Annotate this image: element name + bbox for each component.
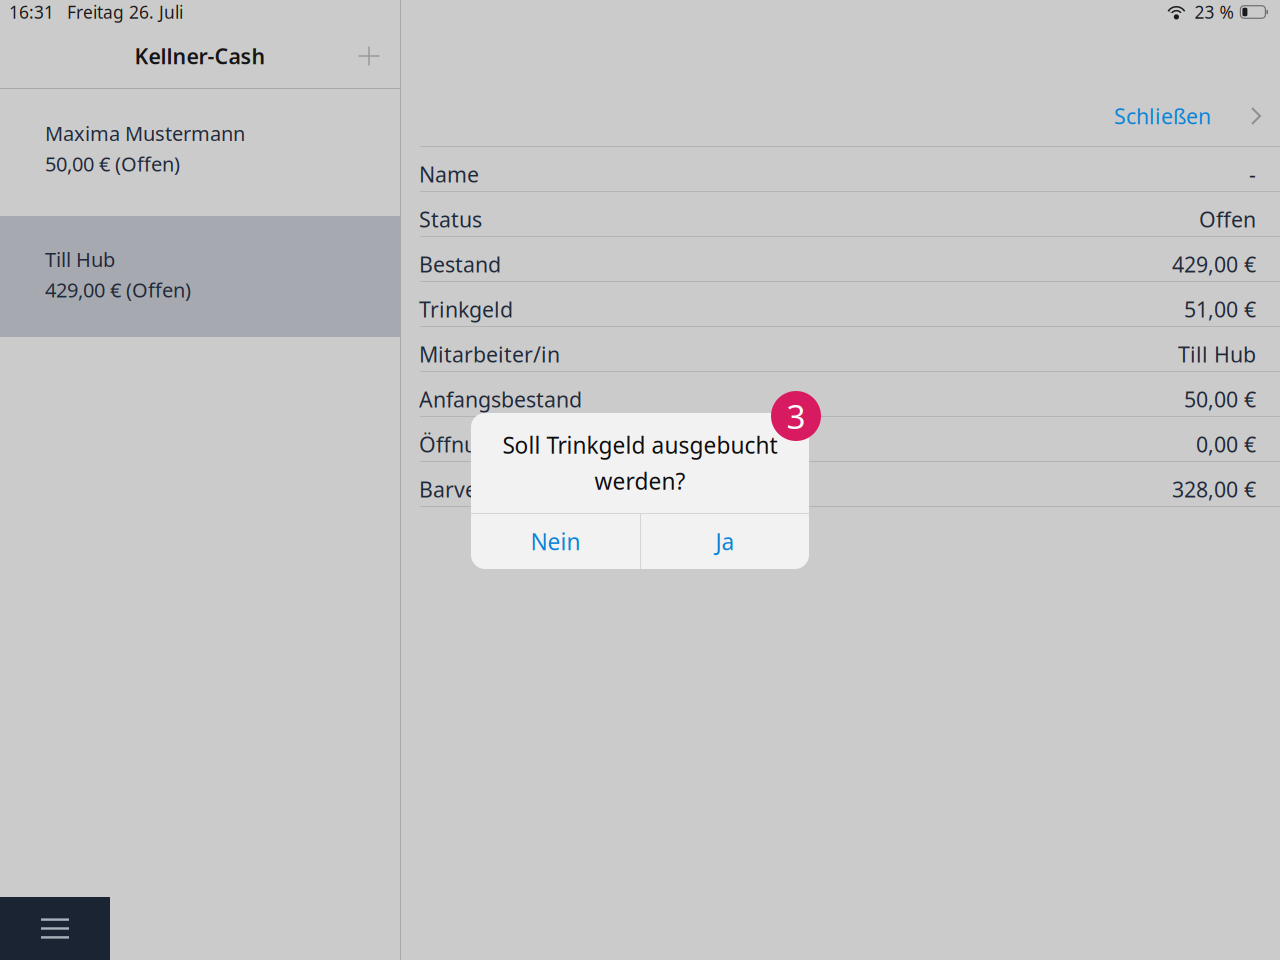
staticText: Mitarbeiter/in — [419, 340, 560, 368]
staticText: Öffnungsbestand — [419, 430, 594, 458]
staticText: Status — [419, 205, 482, 233]
staticText: 0,00 € — [1196, 430, 1256, 458]
button[interactable]: Ja — [641, 514, 809, 569]
button[interactable]: Schließen — [1114, 102, 1211, 130]
staticText: 50,00 € (Offen) — [45, 151, 180, 177]
button[interactable]: Till Hub — [0, 216, 400, 337]
staticText: Schließen — [1114, 102, 1211, 130]
staticText: 3 — [786, 394, 805, 438]
staticText: Till Hub — [1178, 340, 1256, 368]
button[interactable]: Hinzufügen — [347, 34, 391, 78]
staticText: 328,00 € — [1172, 475, 1256, 503]
staticText: Soll Trinkgeld ausgebucht — [502, 430, 777, 460]
staticText: 429,00 € — [1172, 250, 1256, 278]
staticText: Freitag 26. Juli — [67, 0, 183, 23]
staticText: Kellner-Cash — [134, 42, 265, 70]
staticText: Anfangsbestand — [419, 385, 582, 413]
staticText: 16:31 — [9, 0, 54, 23]
staticText: - — [1249, 160, 1256, 188]
staticText: Nein — [530, 526, 580, 556]
button[interactable]: Nein — [471, 514, 640, 569]
staticText: 429,00 € (Offen) — [45, 277, 191, 303]
staticText: Trinkgeld — [419, 295, 513, 323]
button[interactable]: Menü — [0, 897, 110, 960]
staticText: Maxima Mustermann — [45, 120, 245, 147]
staticText: werden? — [594, 466, 685, 496]
staticText: 51,00 € — [1184, 295, 1256, 323]
staticText: Bestand — [419, 250, 501, 278]
button[interactable]: Maxima Mustermann — [0, 89, 400, 216]
staticText: 50,00 € — [1184, 385, 1256, 413]
staticText: Ja — [715, 526, 734, 556]
staticText: 23 % — [1194, 0, 1233, 23]
staticText: Till Hub — [45, 246, 115, 273]
staticText: Name — [419, 160, 479, 188]
staticText: Offen — [1199, 205, 1256, 233]
staticText: Barverkauf — [419, 475, 529, 503]
